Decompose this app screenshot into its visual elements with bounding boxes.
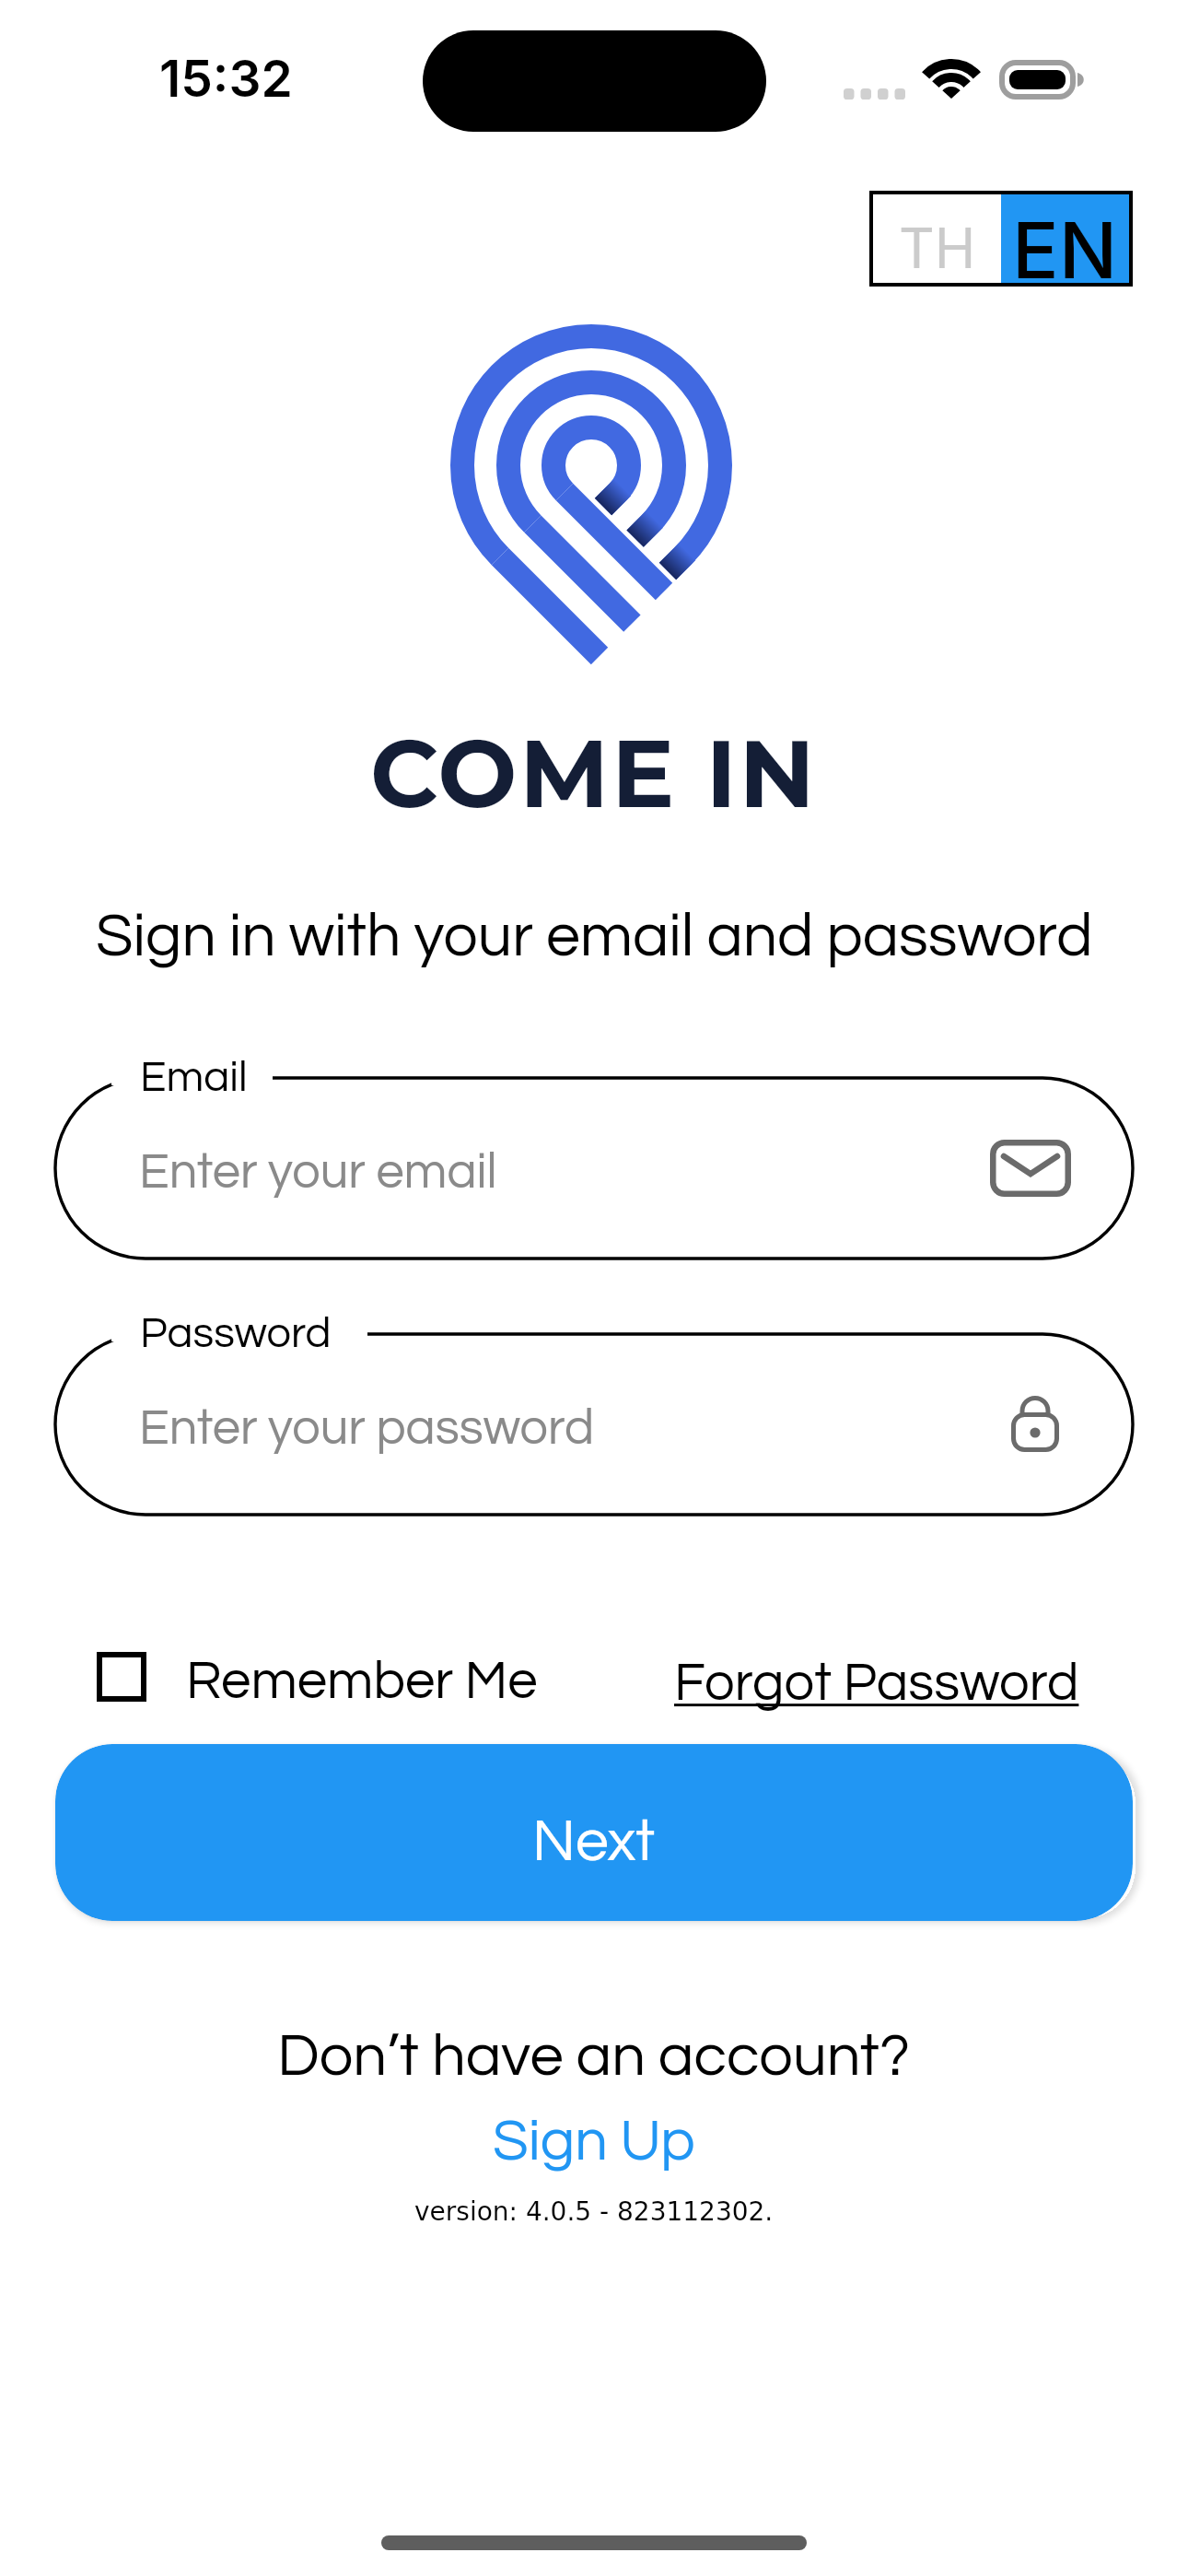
other: Come In logo xyxy=(407,304,775,673)
staticText: Sign in with your email and password xyxy=(96,906,1093,968)
staticText: TH xyxy=(899,215,976,282)
other: Email xyxy=(990,1140,1071,1197)
staticText: Next xyxy=(532,1812,656,1873)
staticText: Enter your password xyxy=(139,1403,595,1455)
staticText: COME IN xyxy=(370,716,818,830)
button[interactable]: Next xyxy=(55,1744,1133,1921)
staticText: EN xyxy=(1012,204,1118,292)
other: Password xyxy=(1011,1396,1059,1452)
staticText: Password xyxy=(140,1311,332,1355)
staticText: Don’t have an account? xyxy=(277,2026,911,2088)
staticText: Remember Me xyxy=(186,1654,538,1709)
staticText: Sign Up xyxy=(493,2112,695,2172)
button[interactable]: Sign Up xyxy=(474,2104,714,2179)
staticText: Email xyxy=(140,1055,248,1099)
button[interactable]: Password xyxy=(55,1297,1133,1515)
button[interactable]: Language TH EN xyxy=(873,194,1129,283)
button[interactable]: Email xyxy=(55,1041,1133,1259)
staticText: version: 4.0.5 - 823112302. xyxy=(414,2196,774,2227)
button[interactable]: Forgot Password xyxy=(665,1641,1089,1722)
button[interactable]: Remember Me xyxy=(84,1636,551,1717)
staticText: 15:32 xyxy=(159,48,293,110)
staticText: Forgot Password xyxy=(674,1656,1079,1711)
staticText: Enter your email xyxy=(139,1147,497,1199)
